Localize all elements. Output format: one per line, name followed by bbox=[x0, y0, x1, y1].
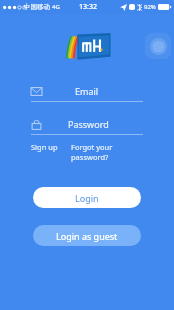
staticText: Login bbox=[75, 192, 99, 204]
staticText: 4G bbox=[52, 3, 60, 11]
staticText: Login as guest bbox=[56, 230, 118, 242]
button[interactable]: Forgot your password? bbox=[71, 142, 143, 162]
staticText: Email bbox=[75, 85, 99, 97]
staticText: 中国移动 bbox=[24, 3, 50, 11]
staticText: 13:32 bbox=[79, 2, 97, 12]
button[interactable]: Email bbox=[31, 85, 143, 102]
button[interactable]: Login as guest bbox=[33, 225, 141, 246]
button[interactable]: Password bbox=[31, 118, 143, 135]
staticText: Password bbox=[68, 118, 109, 130]
button[interactable]: Sign up bbox=[31, 142, 58, 152]
staticText: 92% bbox=[144, 3, 156, 11]
button[interactable]: Login bbox=[33, 187, 141, 208]
button[interactable]: Settings bbox=[145, 33, 171, 59]
